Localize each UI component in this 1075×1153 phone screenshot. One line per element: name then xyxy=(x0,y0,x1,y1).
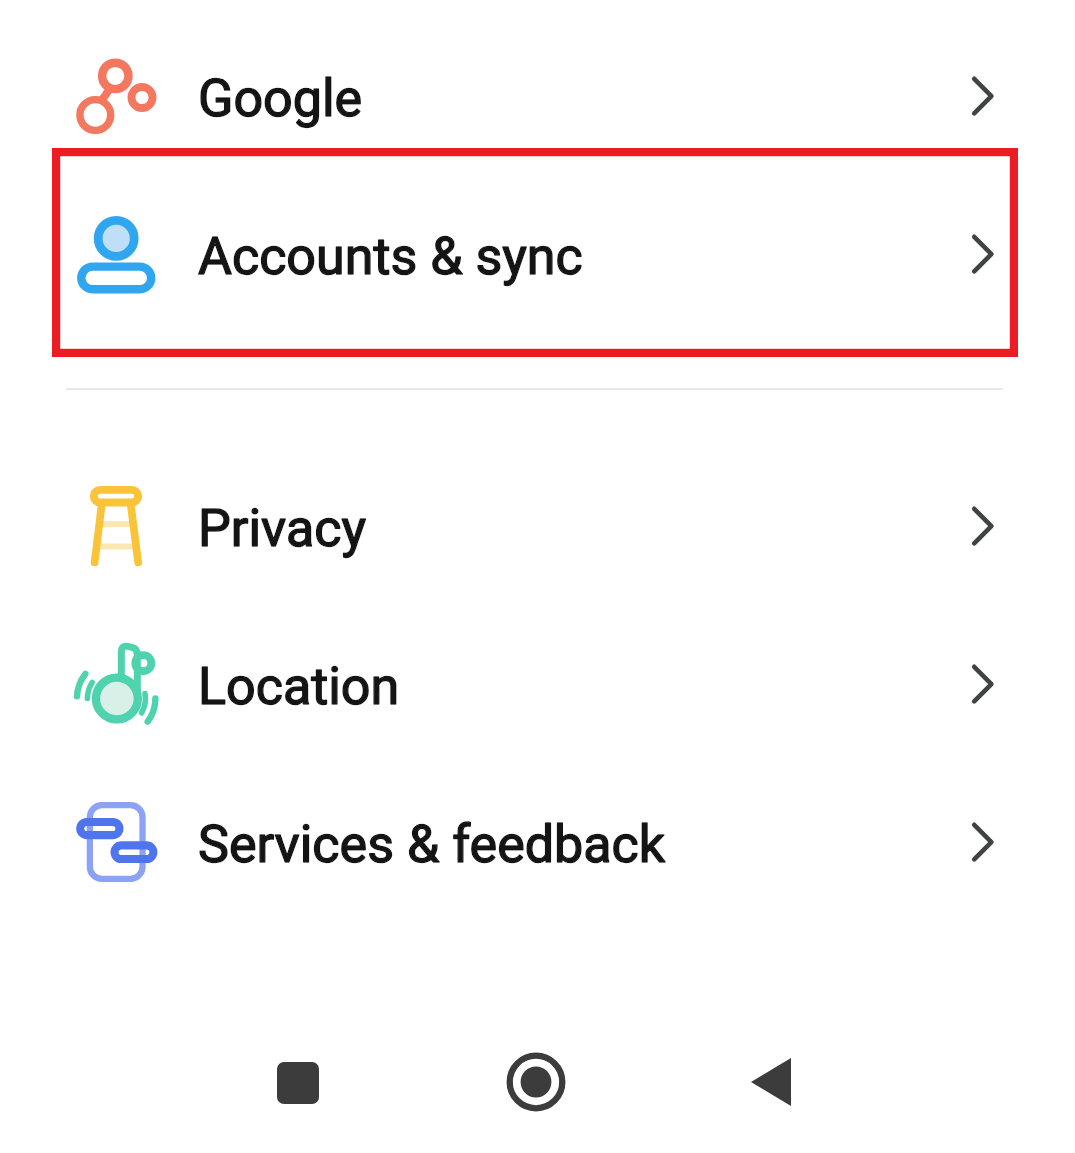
button[interactable]: Home xyxy=(476,1022,595,1141)
staticText: Privacy xyxy=(198,498,366,559)
button[interactable]: Back xyxy=(711,1022,831,1142)
button[interactable]: Services & feedback xyxy=(0,774,1075,914)
button[interactable]: Accounts & sync xyxy=(0,186,1075,326)
button[interactable]: Recent apps xyxy=(237,1022,358,1143)
staticText: Location xyxy=(198,656,400,717)
button[interactable]: Location xyxy=(0,616,1075,756)
button[interactable]: Privacy xyxy=(0,458,1075,598)
staticText: Accounts & sync xyxy=(198,226,583,287)
staticText: Privacy xyxy=(198,498,366,559)
staticText: Google xyxy=(198,68,363,129)
staticText: Location xyxy=(198,656,400,717)
staticText: Services & feedback xyxy=(198,814,666,875)
button[interactable]: Google xyxy=(0,28,1075,168)
staticText: Google xyxy=(198,68,363,129)
staticText: Services & feedback xyxy=(198,814,666,875)
staticText: Accounts & sync xyxy=(198,226,583,287)
